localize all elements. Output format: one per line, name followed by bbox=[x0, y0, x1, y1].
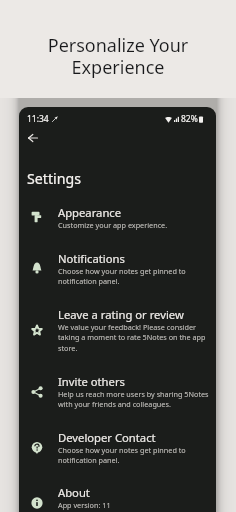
staticText: Settings bbox=[27, 169, 81, 188]
staticText: Developer Contact bbox=[58, 430, 156, 445]
staticText: Notifications bbox=[58, 251, 125, 266]
button[interactable]: Developer Contact bbox=[19, 420, 216, 475]
staticText: Choose how your notes get pinned to noti… bbox=[58, 266, 186, 286]
staticText: About bbox=[58, 485, 90, 500]
other: Developer Contact bbox=[31, 442, 43, 454]
staticText: Invite others bbox=[58, 374, 125, 389]
staticText: We value your feedback! Please consider … bbox=[58, 322, 206, 353]
staticText: App version: 11 Last updated recently. bbox=[58, 500, 134, 512]
other: About bbox=[31, 497, 43, 509]
staticText: 82% bbox=[181, 113, 198, 125]
staticText: Personalize Your Experience bbox=[0, 33, 236, 79]
other: Appearance bbox=[31, 211, 43, 223]
button[interactable]: Leave a rating or review bbox=[19, 296, 216, 363]
staticText: Appearance bbox=[58, 205, 122, 220]
staticText: 11:34 bbox=[27, 113, 49, 125]
other: Invite others bbox=[31, 386, 43, 398]
staticText: Help us reach more users by sharing 5Not… bbox=[58, 389, 209, 409]
staticText: Choose how your notes get pinned to noti… bbox=[58, 445, 186, 465]
button[interactable]: Appearance bbox=[19, 194, 216, 240]
button[interactable]: Invite others bbox=[19, 363, 216, 420]
staticText: Leave a rating or review bbox=[58, 307, 184, 322]
button[interactable]: About bbox=[19, 475, 216, 512]
button[interactable]: Back bbox=[20, 125, 46, 151]
other: Leave a rating or review bbox=[31, 324, 43, 336]
staticText: Customize your app experience. bbox=[58, 220, 168, 230]
other: Notifications bbox=[31, 262, 43, 274]
button[interactable]: Notifications bbox=[19, 240, 216, 296]
